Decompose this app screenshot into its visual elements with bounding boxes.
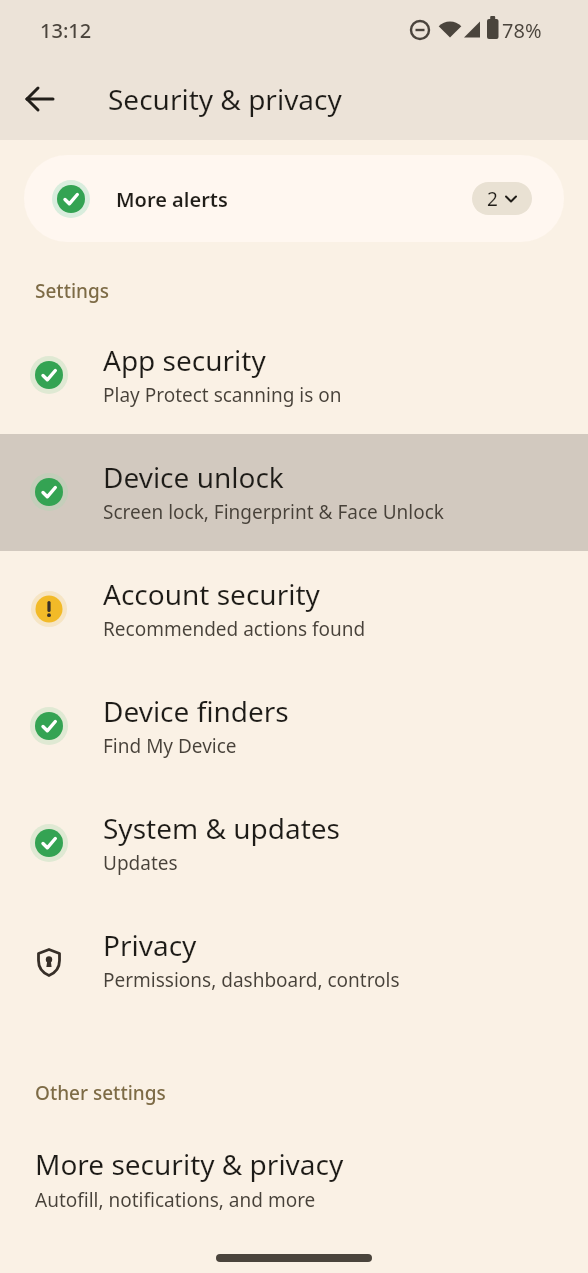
staticText: Privacy	[103, 926, 197, 964]
staticText: Account security	[103, 575, 320, 613]
button[interactable]: Account security	[0, 551, 588, 668]
staticText: Other settings	[35, 1080, 166, 1106]
button[interactable]	[16, 75, 64, 123]
button[interactable]: More security & privacy	[0, 1120, 588, 1237]
staticText: More security & privacy	[35, 1145, 344, 1183]
staticText: Permissions, dashboard, controls	[103, 967, 400, 993]
staticText: 13:12	[40, 17, 92, 44]
staticText: 78%	[502, 17, 542, 44]
button[interactable]: Privacy	[0, 902, 588, 1019]
staticText: Screen lock, Fingerprint & Face Unlock	[103, 499, 444, 525]
staticText: System & updates	[103, 809, 340, 847]
staticText: Play Protect scanning is on	[103, 382, 342, 408]
staticText: Settings	[35, 278, 109, 304]
staticText: Recommended actions found	[103, 616, 366, 642]
button[interactable]: 2	[472, 182, 532, 215]
button[interactable]: Device unlock	[0, 434, 588, 551]
button[interactable]: App security	[0, 317, 588, 434]
staticText: 2	[487, 186, 498, 212]
staticText: App security	[103, 341, 266, 379]
staticText: More alerts	[116, 186, 228, 213]
staticText: Updates	[103, 850, 178, 876]
staticText: Autofill, notifications, and more	[35, 1187, 316, 1213]
button[interactable]: Device finders	[0, 668, 588, 785]
button[interactable]: More alerts	[24, 155, 564, 242]
button[interactable]: System & updates	[0, 785, 588, 902]
staticText: Find My Device	[103, 733, 237, 759]
staticText: Security & privacy	[108, 80, 342, 118]
staticText: Device finders	[103, 692, 289, 730]
staticText: Device unlock	[103, 458, 284, 496]
